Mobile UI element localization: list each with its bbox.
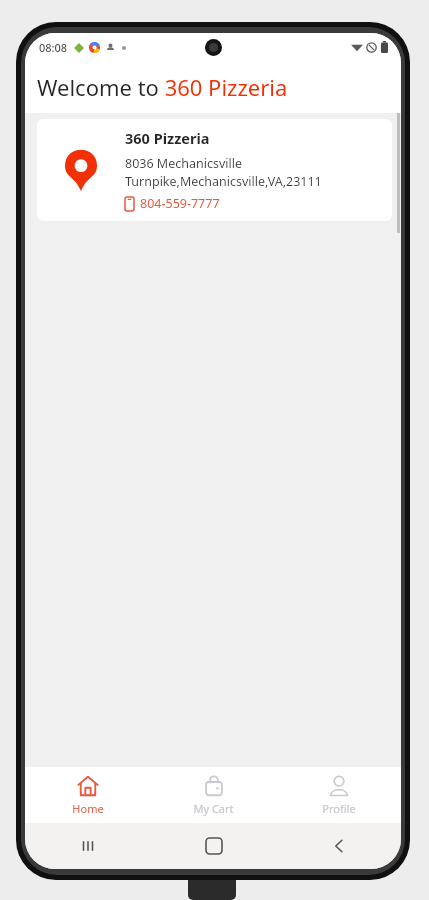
button[interactable]: Recent apps <box>25 823 151 869</box>
staticText: Home <box>72 801 104 816</box>
staticText: 08:08 <box>39 40 68 55</box>
button[interactable]: Home <box>25 767 151 823</box>
button[interactable]: Back <box>276 823 401 869</box>
staticText: Turnpike,Mechanicsville,VA,23111 <box>125 173 322 190</box>
staticText: Profile <box>322 801 356 816</box>
button[interactable]: 804-559-7777 <box>125 195 220 212</box>
staticText: 8036 Mechanicsville <box>125 155 242 172</box>
staticText: 804-559-7777 <box>140 195 220 212</box>
button[interactable]: My Cart <box>151 767 276 823</box>
staticText: My Cart <box>193 801 234 816</box>
button[interactable]: Home <box>151 823 276 869</box>
button[interactable]: Profile <box>276 767 401 823</box>
staticText: Welcome to 360 Pizzeria <box>37 72 288 102</box>
button[interactable]: 360 Pizzeria <box>37 119 392 221</box>
staticText: 360 Pizzeria <box>125 128 210 148</box>
